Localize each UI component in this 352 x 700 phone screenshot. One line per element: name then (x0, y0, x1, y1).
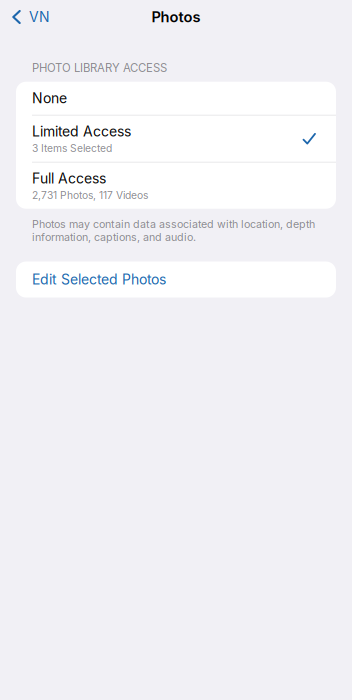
staticText: None (32, 90, 67, 107)
staticText: 3 Items Selected (32, 142, 112, 154)
staticText: PHOTO LIBRARY ACCESS (32, 61, 167, 75)
staticText: Photos may contain data associated with … (32, 218, 315, 243)
staticText: Photos (151, 8, 200, 26)
button[interactable]: Limited Access (16, 116, 336, 162)
staticText: 2,731 Photos, 117 Videos (32, 189, 148, 201)
button[interactable]: None (16, 82, 336, 115)
staticText: VN (29, 8, 50, 25)
staticText: Edit Selected Photos (32, 271, 166, 288)
button[interactable]: Full Access (16, 163, 336, 209)
button[interactable]: VN (0, 2, 60, 31)
staticText: Limited Access (32, 123, 131, 140)
staticText: Full Access (32, 170, 106, 187)
button[interactable]: Edit Selected Photos (0, 261, 352, 297)
